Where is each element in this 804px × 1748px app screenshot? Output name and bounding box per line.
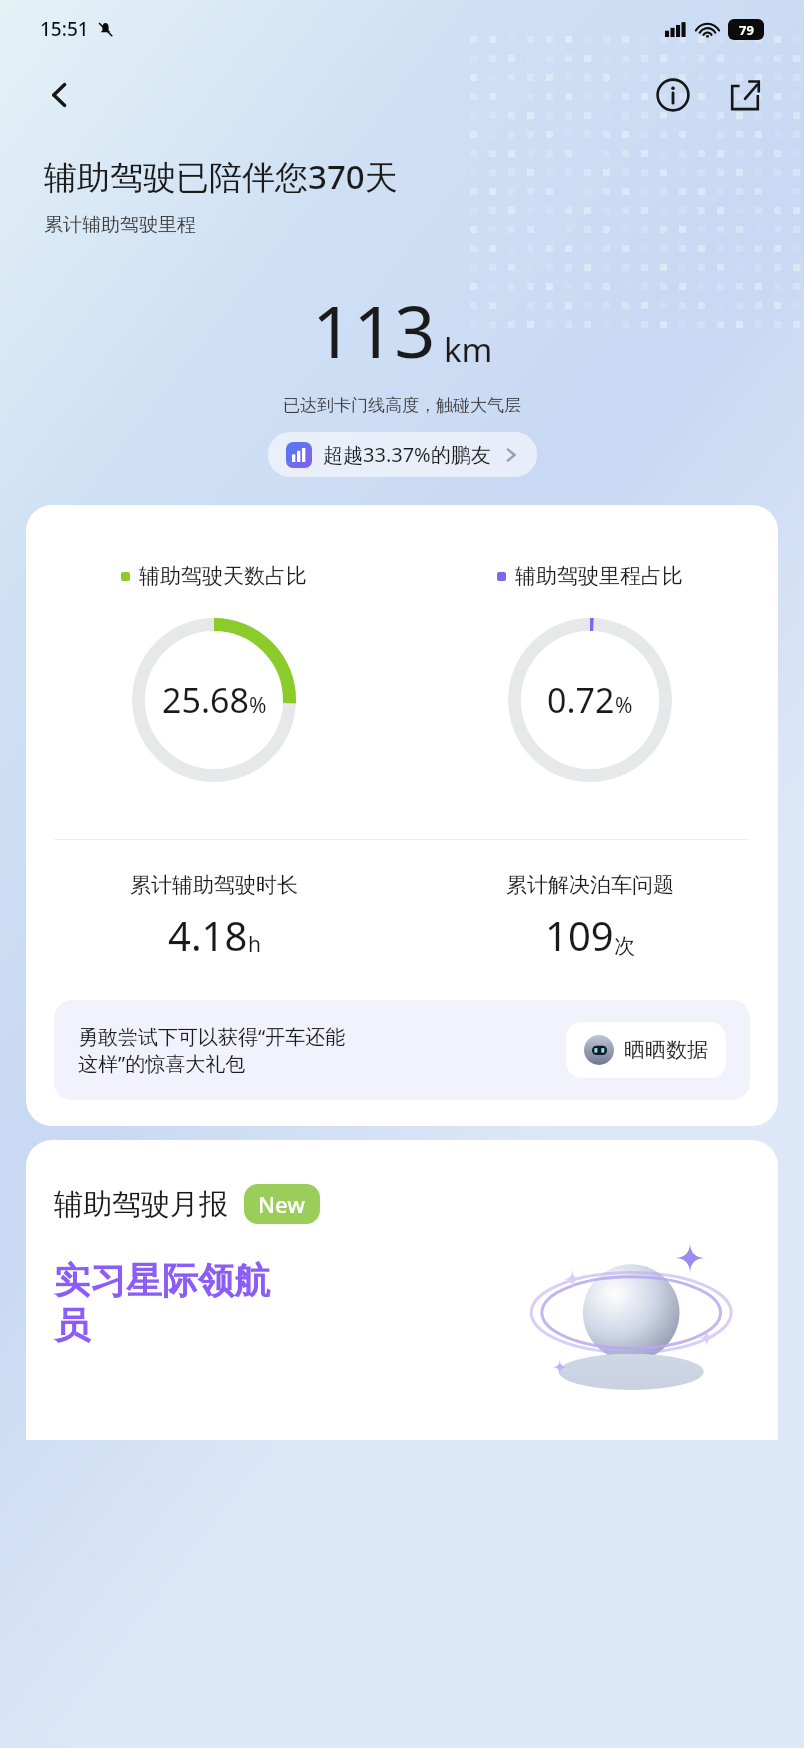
staticText: 次 [614, 933, 635, 959]
staticText: 这样”的惊喜大礼包 [78, 1050, 246, 1077]
button[interactable]: Info [646, 68, 700, 122]
staticText: h [248, 930, 261, 959]
staticText: 辅助驾驶天数占比 [139, 563, 307, 589]
staticText: 辅助驾驶月报 [54, 1186, 228, 1223]
staticText: New [258, 1189, 306, 1219]
staticText: 超越33.37%的鹏友 [323, 441, 491, 468]
button[interactable]: Share [718, 68, 772, 122]
staticText: 累计解决泊车问题 [506, 872, 674, 898]
staticText: 辅助驾驶里程占比 [515, 563, 683, 589]
staticText: 实习星际领航 [54, 1258, 270, 1303]
staticText: 15:51 [40, 16, 89, 42]
staticText: 109 [545, 908, 614, 962]
button[interactable]: 辅助驾驶月报 [26, 1140, 778, 1440]
staticText: 已达到卡门线高度，触碰大气层 [0, 395, 804, 416]
staticText: 勇敢尝试下可以获得“开车还能 [78, 1023, 346, 1050]
staticText: 113 [312, 281, 436, 379]
staticText: 79 [739, 21, 754, 39]
staticText: 累计辅助驾驶时长 [130, 872, 298, 898]
staticText: 辅助驾驶已陪伴您370天 [44, 154, 398, 199]
button[interactable]: Back [34, 69, 86, 121]
button[interactable]: 晒晒数据 [566, 1022, 726, 1078]
staticText: 0.72 [547, 677, 615, 723]
staticText: km [444, 327, 493, 372]
button[interactable]: 超越33.37%的鹏友 [268, 432, 537, 477]
staticText: 累计辅助驾驶里程 [44, 213, 196, 237]
staticText: 晒晒数据 [624, 1037, 708, 1063]
staticText: 25.68 [162, 677, 249, 723]
staticText: 4.18 [168, 908, 248, 962]
staticText: % [615, 691, 633, 720]
staticText: % [249, 691, 267, 720]
staticText: 员 [54, 1303, 90, 1348]
